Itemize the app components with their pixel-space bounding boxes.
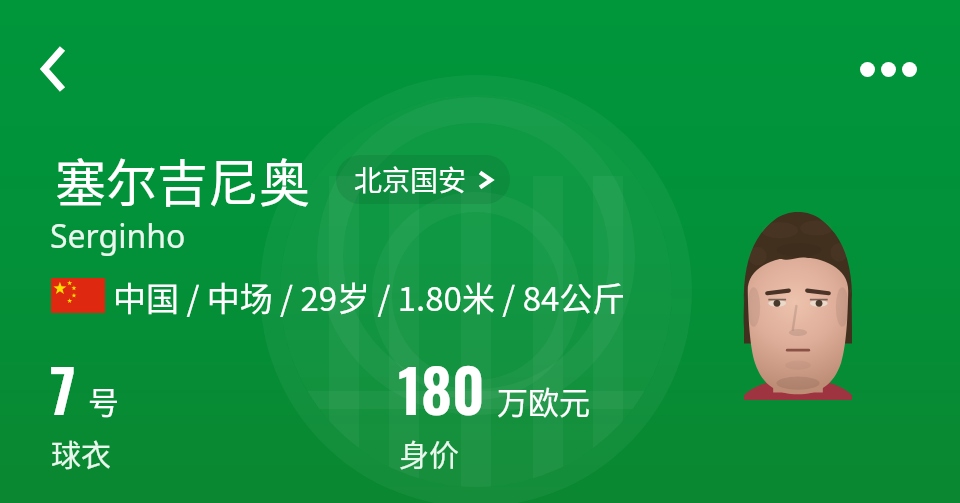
staticText: 球衣 <box>51 431 111 474</box>
staticText: 万欧元 <box>497 378 590 423</box>
staticText: 塞尔吉尼奥 <box>55 143 311 217</box>
staticText: 中国 / 中场 / 29岁 / 1.80米 / 84公斤 <box>113 273 626 321</box>
staticText: 180 <box>398 343 485 432</box>
button[interactable]: More options <box>838 42 938 96</box>
button[interactable]: 北京国安 <box>336 155 510 204</box>
staticText: Serginho <box>50 214 186 258</box>
staticText: 身价 <box>399 431 459 474</box>
button[interactable]: Back <box>6 22 100 116</box>
staticText: 号 <box>88 378 119 423</box>
staticText: 7 <box>50 343 76 432</box>
staticText: 北京国安 <box>354 159 467 200</box>
